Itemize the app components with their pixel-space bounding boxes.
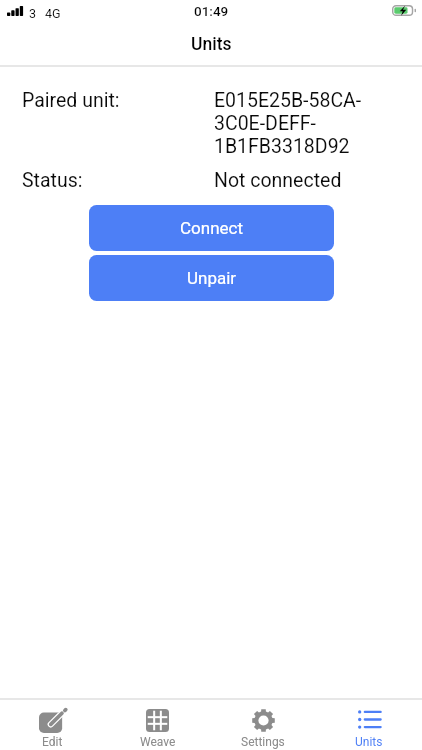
staticText: 01:49 xyxy=(194,3,229,19)
staticText: Not connected xyxy=(214,169,342,192)
staticText: Status: xyxy=(22,169,214,192)
staticText: E015E25B-58CA- xyxy=(214,89,362,112)
staticText: Edit xyxy=(42,735,63,749)
button[interactable]: Units xyxy=(316,700,422,750)
staticText: Settings xyxy=(241,735,285,749)
staticText: 1B1FB3318D92 xyxy=(214,135,350,158)
staticText: 3C0E-DEFF- xyxy=(214,112,316,135)
staticText: Unpair xyxy=(187,268,237,288)
staticText: Weave xyxy=(140,735,176,749)
staticText: 3 xyxy=(29,6,37,21)
button[interactable]: Unpair xyxy=(89,255,334,301)
staticText: Units xyxy=(355,735,383,749)
staticText: Units xyxy=(191,34,232,55)
button[interactable]: Settings xyxy=(210,700,316,750)
button[interactable]: Weave xyxy=(105,700,210,750)
staticText: Paired unit: xyxy=(22,89,214,112)
staticText: Connect xyxy=(180,218,244,238)
button[interactable]: Connect xyxy=(89,205,334,251)
button[interactable]: Edit xyxy=(0,700,105,750)
staticText: 4G xyxy=(45,6,61,21)
